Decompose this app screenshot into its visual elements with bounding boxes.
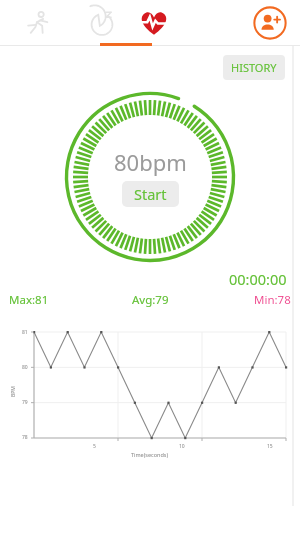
button[interactable]: Activity — [0, 0, 76, 46]
staticText: 80 — [22, 364, 28, 371]
staticText: Start — [134, 184, 167, 204]
staticText: Time(seconds) — [131, 451, 169, 458]
staticText: 78 — [22, 434, 28, 441]
staticText: Avg:79 — [132, 292, 169, 308]
button[interactable]: Sleep — [76, 0, 128, 46]
button[interactable]: Add user — [240, 0, 300, 46]
staticText: 5 — [93, 443, 96, 450]
staticText: 81 — [22, 329, 28, 336]
button[interactable]: Start — [122, 181, 179, 207]
staticText: 10 — [179, 443, 185, 450]
button[interactable]: HISTORY — [223, 55, 285, 80]
staticText: Min:78 — [254, 292, 291, 308]
staticText: 15 — [267, 443, 273, 450]
button[interactable]: Heart rate — [128, 0, 180, 46]
staticText: 00:00:00 — [229, 269, 287, 289]
staticText: Max:81 — [9, 292, 49, 308]
staticText: 79 — [22, 399, 28, 406]
staticText: 80bpm — [114, 147, 187, 177]
staticText: HISTORY — [231, 60, 277, 75]
staticText: BPM — [10, 386, 17, 397]
